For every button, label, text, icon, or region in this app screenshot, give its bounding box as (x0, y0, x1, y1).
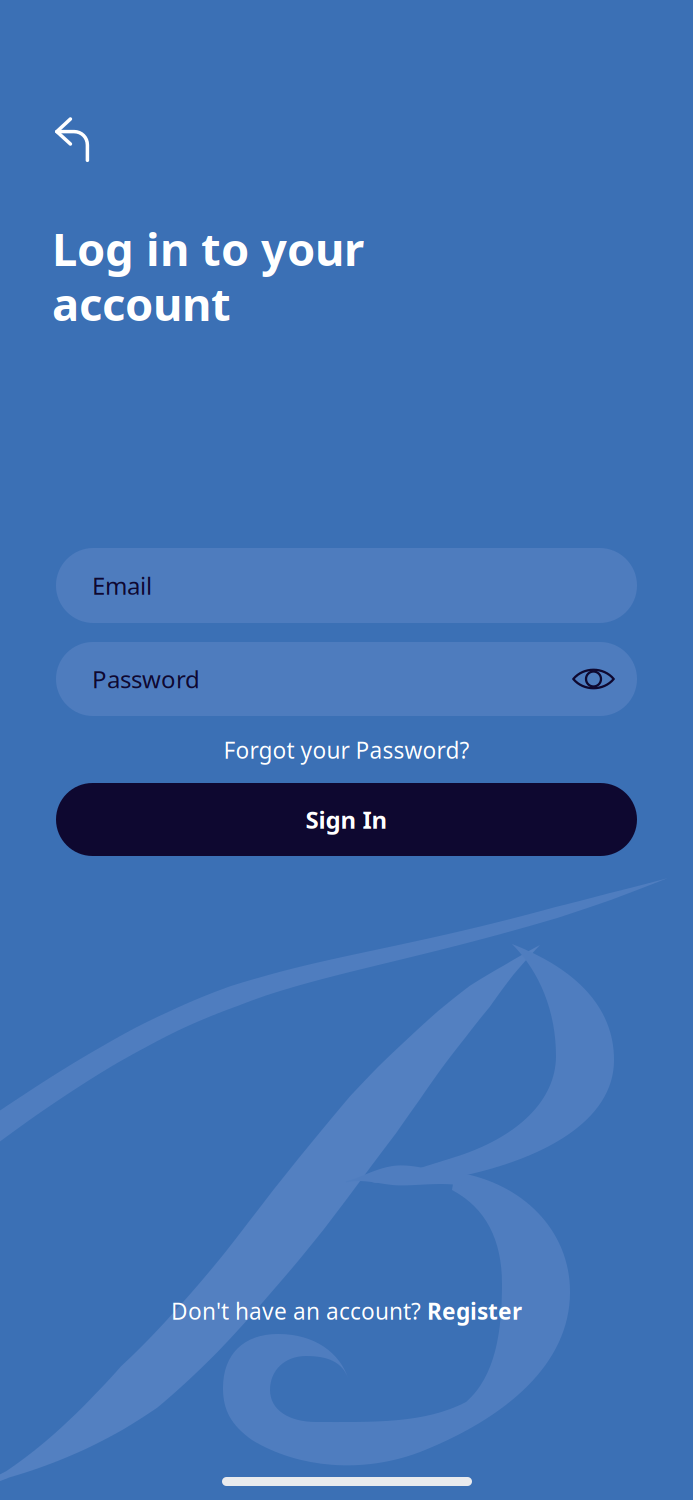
staticText: Sign In (305, 804, 387, 835)
button[interactable]: Sign In (56, 783, 637, 856)
staticText: Forgot your Password? (223, 735, 469, 765)
button[interactable]: Forgot your Password? (56, 729, 637, 771)
staticText: Email (92, 570, 152, 601)
staticText: account (52, 273, 231, 334)
button[interactable]: Back (56, 117, 126, 181)
staticText: Don't have an account? (171, 1296, 427, 1326)
button[interactable]: Don't have an account? (0, 1291, 693, 1331)
staticText: Register (427, 1296, 522, 1326)
staticText: Password (92, 663, 200, 695)
staticText: Log in to your (52, 218, 364, 279)
